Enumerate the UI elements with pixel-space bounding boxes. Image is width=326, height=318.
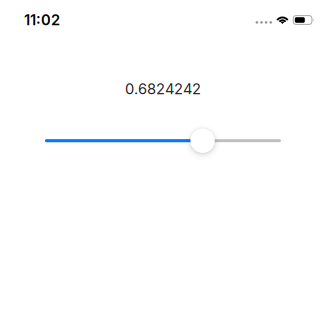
button[interactable]: Value slider [45,128,281,153]
staticText: 0.6824242 [125,80,201,98]
staticText: 11:02 [24,11,60,29]
